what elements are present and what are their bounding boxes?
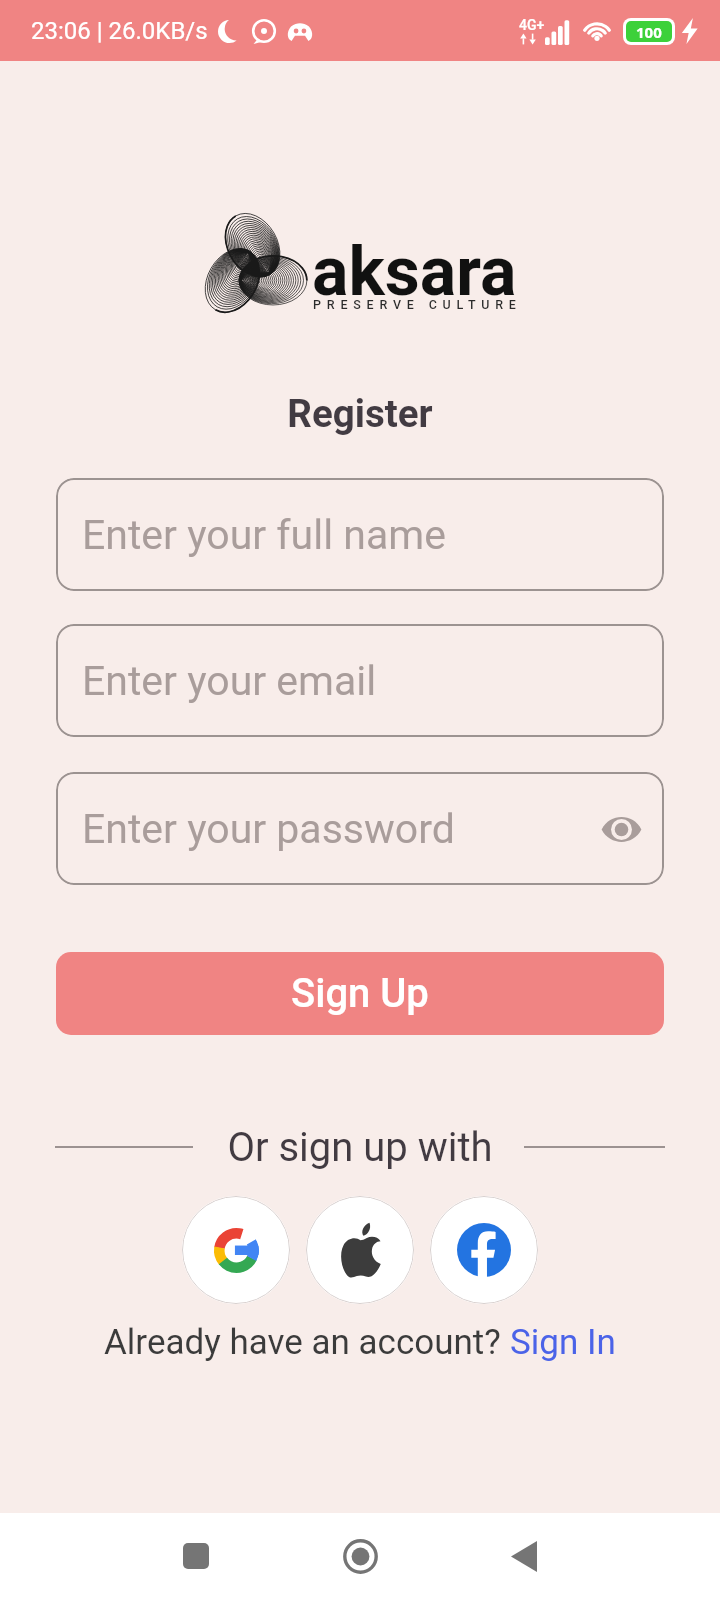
staticText: 100 (636, 22, 662, 42)
staticText: Register (0, 391, 720, 436)
button[interactable]: Sign up with Apple (306, 1196, 414, 1304)
button[interactable]: Sign Up (56, 952, 664, 1035)
button[interactable]: Home (328, 1524, 392, 1588)
staticText: Sign Up (291, 970, 429, 1017)
staticText: aksara (312, 232, 517, 312)
button[interactable]: Recent apps (164, 1524, 228, 1588)
button[interactable]: Show password (595, 803, 647, 855)
staticText: 23:06 | 26.0KB/s (31, 17, 208, 45)
button[interactable]: Back (492, 1524, 556, 1588)
button[interactable]: Enter your password (56, 772, 664, 885)
button[interactable]: Enter your full name (56, 478, 664, 591)
staticText: Sign In (510, 1322, 616, 1363)
button[interactable]: Sign up with Facebook (430, 1196, 538, 1304)
staticText: Or sign up with (0, 1124, 720, 1171)
button[interactable]: Enter your email (56, 624, 664, 737)
staticText: Enter your full name (82, 511, 446, 559)
staticText: Already have an account? (104, 1322, 510, 1363)
staticText: Enter your email (82, 657, 377, 705)
staticText: Enter your password (82, 805, 455, 853)
staticText: 4G+ (519, 17, 545, 33)
button[interactable]: Sign up with Google (182, 1196, 290, 1304)
button[interactable]: Sign In (510, 1322, 616, 1363)
staticText: PRESERVE CULTURE (313, 297, 522, 312)
